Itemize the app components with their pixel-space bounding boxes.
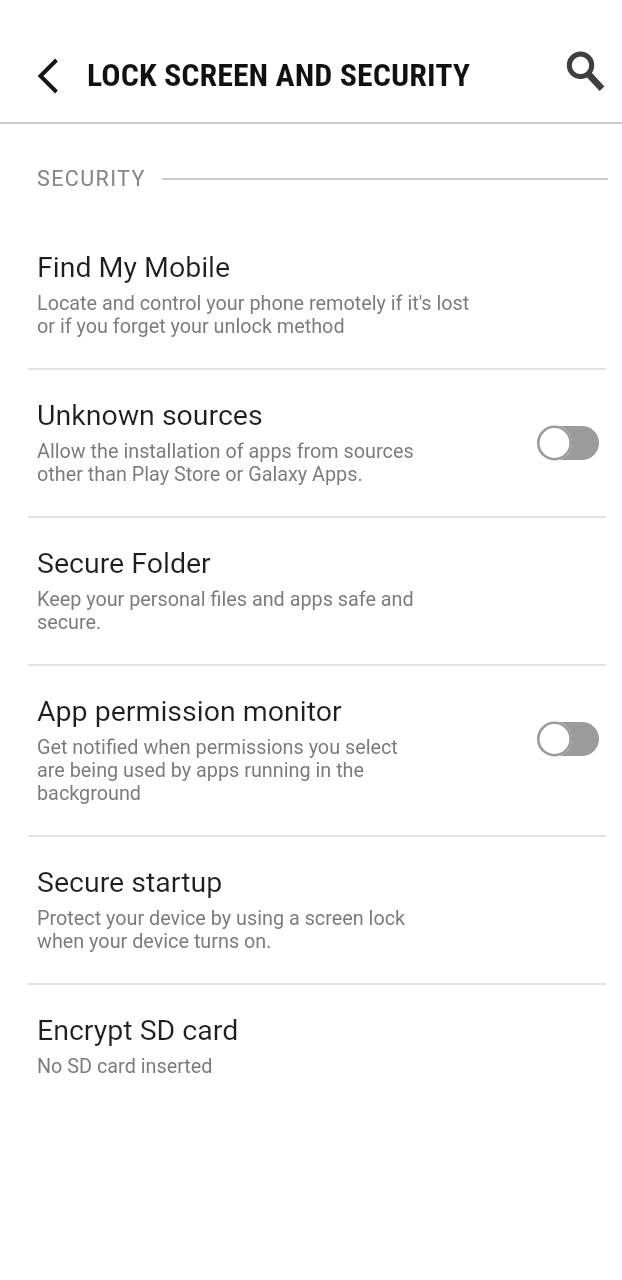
staticText: Encrypt SD card: [37, 1014, 239, 1047]
staticText: Secure Folder: [37, 547, 211, 580]
button[interactable]: Find My Mobile: [0, 222, 622, 368]
staticText: Allow the installation of apps from sour…: [37, 440, 414, 486]
button[interactable]: [553, 41, 601, 89]
staticText: Protect your device by using a screen lo…: [37, 907, 406, 953]
staticText: Secure startup: [37, 866, 223, 899]
staticText: No SD card inserted: [37, 1055, 213, 1078]
button[interactable]: Secure startup: [0, 837, 622, 983]
staticText: App permission monitor: [37, 695, 342, 728]
button[interactable]: [537, 721, 599, 757]
staticText: Get notified when permissions you select…: [37, 736, 398, 805]
button[interactable]: [537, 425, 599, 461]
staticText: Locate and control your phone remotely i…: [37, 292, 470, 338]
staticText: LOCK SCREEN AND SECURITY: [87, 56, 471, 94]
staticText: Keep your personal files and apps safe a…: [37, 588, 414, 634]
staticText: Find My Mobile: [37, 251, 231, 284]
button[interactable]: Unknown sources: [0, 370, 622, 516]
button[interactable]: App permission monitor: [0, 666, 622, 835]
button[interactable]: Secure Folder: [0, 518, 622, 664]
button[interactable]: Encrypt SD card: [0, 985, 622, 1108]
button[interactable]: [25, 52, 73, 100]
staticText: Unknown sources: [37, 399, 263, 432]
staticText: SECURITY: [37, 166, 146, 191]
